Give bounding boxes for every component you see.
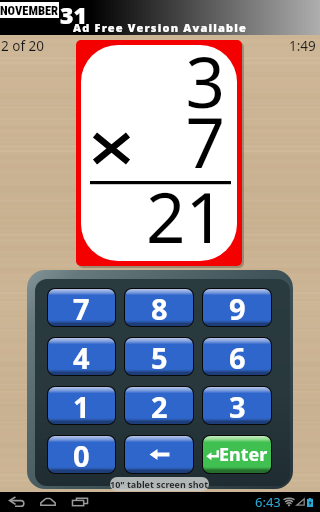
staticText: 0 [73, 436, 90, 473]
button[interactable]: Back [0, 492, 32, 512]
button[interactable]: 4 [48, 338, 115, 375]
button[interactable]: Enter [203, 436, 271, 473]
staticText: NOVEMBER [0, 3, 59, 18]
staticText: 7 [73, 289, 90, 326]
button[interactable]: Home [32, 492, 64, 512]
button[interactable]: Backspace [125, 436, 193, 473]
button[interactable]: 0 [48, 436, 115, 473]
button[interactable]: 3 [203, 387, 271, 424]
button[interactable]: 9 [203, 289, 271, 326]
button[interactable]: NOVEMBER [0, 0, 320, 35]
staticText: 1:49 [289, 37, 316, 55]
button[interactable]: Recent apps [64, 492, 96, 512]
button[interactable]: 7 [48, 289, 115, 326]
staticText: 3 [229, 387, 246, 424]
staticText: 6:43 [255, 493, 281, 511]
staticText: 10" tablet screen shot [110, 478, 209, 490]
staticText: 5 [151, 338, 168, 375]
staticText: 6 [229, 338, 246, 375]
staticText: 3 [81, 45, 225, 128]
staticText: 2 of 20 [1, 37, 44, 55]
staticText: 21 [81, 169, 225, 261]
staticText: Ad Free Version Available [73, 20, 248, 35]
button[interactable]: 5 [125, 338, 193, 375]
staticText: Enter [219, 442, 268, 467]
staticText: 31 [60, 0, 87, 30]
button[interactable]: 8 [125, 289, 193, 326]
staticText: 7 [81, 94, 225, 188]
button[interactable]: 1 [48, 387, 115, 424]
button[interactable]: 2 [125, 387, 193, 424]
staticText: 8 [151, 289, 168, 326]
staticText: 2 [151, 387, 168, 424]
staticText: 1 [73, 387, 90, 424]
button[interactable]: 3 [76, 40, 242, 266]
button[interactable]: 6 [203, 338, 271, 375]
staticText: 4 [73, 338, 90, 375]
staticText: 9 [229, 289, 246, 326]
